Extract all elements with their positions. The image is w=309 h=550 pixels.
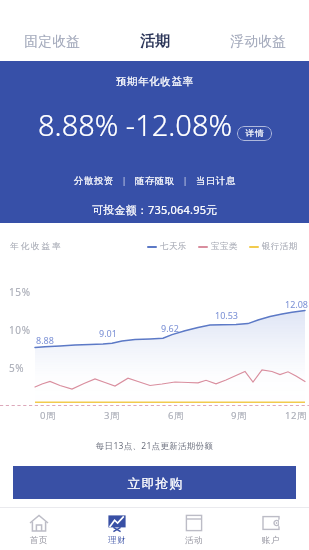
staticText: 9.01 <box>99 327 117 339</box>
staticText: 3周 <box>104 409 121 422</box>
staticText: 活期 <box>140 32 170 51</box>
staticText: 分散投资 <box>74 175 114 187</box>
staticText: 10% <box>9 323 31 337</box>
staticText: 随存随取 <box>135 175 175 187</box>
staticText: 10.53 <box>215 309 239 321</box>
staticText: 8.88 <box>36 334 54 346</box>
button[interactable]: Activity <box>155 508 232 550</box>
staticText: 15% <box>9 285 31 299</box>
staticText: 8.88% -12.08% <box>38 105 233 144</box>
staticText: 立即抢购 <box>127 475 183 491</box>
staticText: 首页 <box>30 535 48 546</box>
staticText: 宝宝类 <box>211 241 238 252</box>
staticText: 理财 <box>108 535 126 546</box>
staticText: 12.08 <box>285 298 309 310</box>
staticText: 当日计息 <box>196 175 236 187</box>
button[interactable]: Home <box>0 508 78 550</box>
button[interactable]: Account <box>232 508 309 550</box>
staticText: 5% <box>9 361 25 375</box>
staticText: 每日13点、21点更新活期份额 <box>0 440 309 452</box>
staticText: 详情 <box>245 128 264 139</box>
button[interactable]: 固定收益 <box>0 21 103 61</box>
staticText: | <box>175 174 196 187</box>
button[interactable]: 活期 <box>103 21 206 61</box>
staticText: 0周 <box>40 409 57 422</box>
button[interactable]: 详情 <box>237 126 272 141</box>
staticText: 账户 <box>262 535 280 546</box>
staticText: 预期年化收益率 <box>116 75 194 88</box>
staticText: 6周 <box>168 409 185 422</box>
staticText: | <box>114 174 135 187</box>
staticText: 固定收益 <box>24 33 80 50</box>
staticText: 活动 <box>185 535 203 546</box>
staticText: 七天乐 <box>160 241 187 252</box>
button[interactable]: 浮动收益 <box>206 21 309 61</box>
staticText: 年化收益率 <box>10 241 63 252</box>
staticText: 浮动收益 <box>230 33 286 50</box>
button[interactable]: Finance <box>78 508 155 550</box>
staticText: 可投金额：735,064.95元 <box>92 202 218 217</box>
staticText: 银行活期 <box>262 241 298 252</box>
staticText: 9周 <box>231 409 248 422</box>
staticText: 12周 <box>285 409 308 422</box>
staticText: 9.62 <box>161 322 179 334</box>
button[interactable]: 立即抢购 <box>13 466 296 499</box>
